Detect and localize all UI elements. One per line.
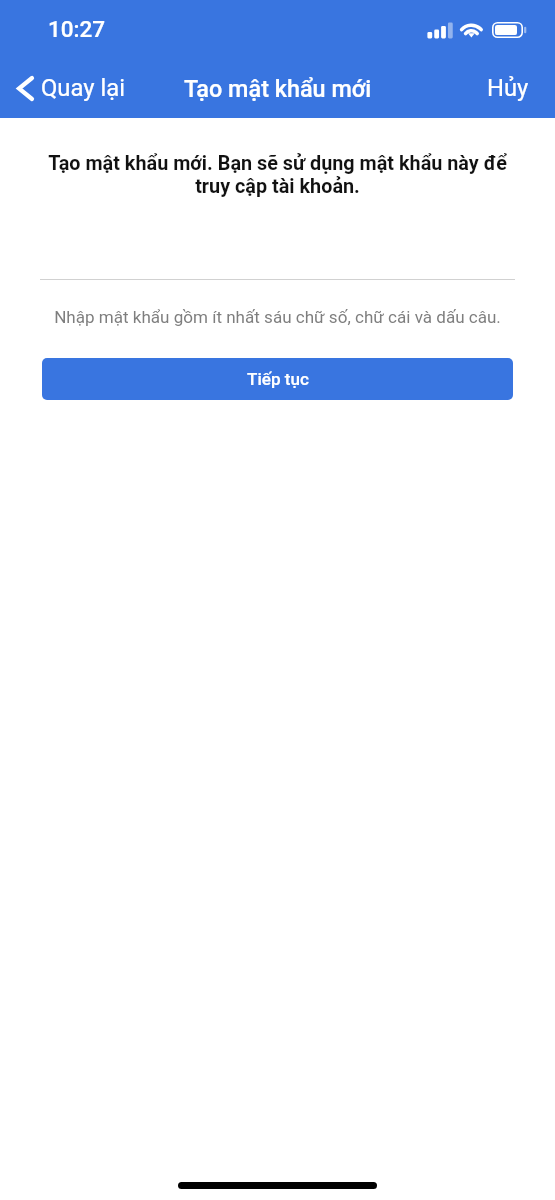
button[interactable]: Tiếp tục xyxy=(42,358,513,400)
staticText: Quay lại xyxy=(41,74,125,102)
staticText: Tạo mật khẩu mới. Bạn sẽ sử dụng mật khẩ… xyxy=(38,152,517,198)
other: Back xyxy=(17,76,32,101)
staticText: Tiếp tục xyxy=(247,369,309,389)
staticText: Tạo mật khẩu mới xyxy=(184,75,372,102)
staticText: Hủy xyxy=(487,74,529,102)
button[interactable]: Back xyxy=(0,66,135,110)
button[interactable]: Hủy xyxy=(465,66,555,110)
staticText: Nhập mật khẩu gồm ít nhất sáu chữ số, ch… xyxy=(22,307,533,327)
staticText: 10:27 xyxy=(48,16,106,42)
